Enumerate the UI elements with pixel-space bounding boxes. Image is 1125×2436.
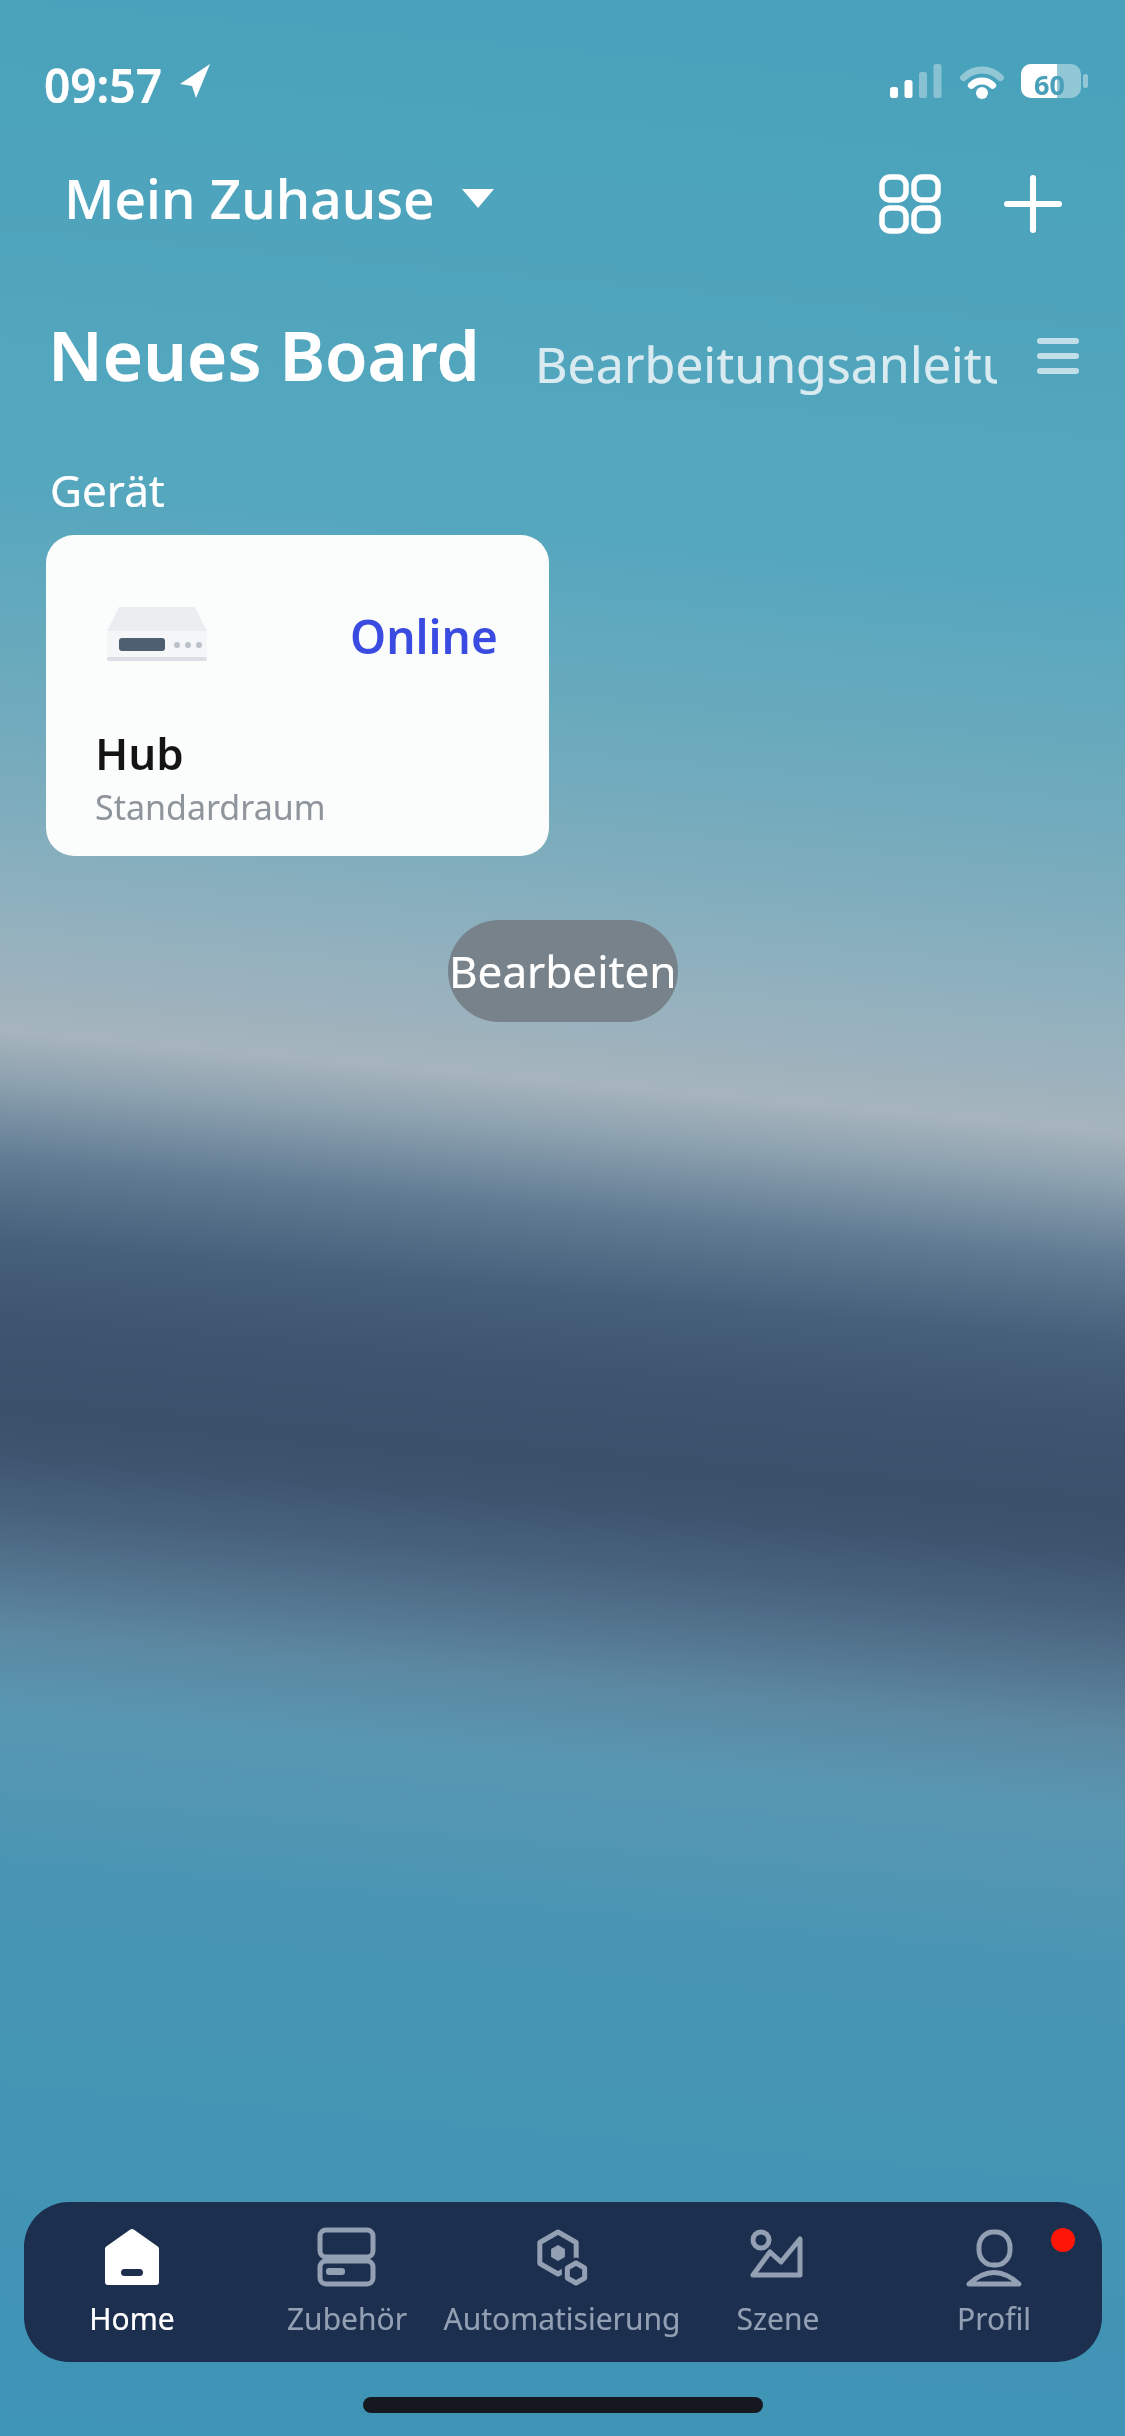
- button[interactable]: Bearbeitungsanleitung: [535, 330, 997, 398]
- button[interactable]: Szene: [670, 2202, 886, 2362]
- button[interactable]: Mein Zuhause: [64, 160, 495, 235]
- button[interactable]: [870, 164, 950, 244]
- button[interactable]: [995, 164, 1071, 244]
- button[interactable]: Bearbeiten: [448, 920, 678, 1022]
- staticText: Automatisierung: [402, 2298, 722, 2339]
- staticText: Profil: [834, 2298, 1102, 2339]
- staticText: Mein Zuhause: [64, 160, 435, 235]
- staticText: Bearbeitungsanleitung: [535, 330, 997, 398]
- staticText: Bearbeiten: [449, 941, 677, 1001]
- staticText: Hub: [95, 723, 184, 783]
- staticText: Neues Board: [48, 307, 480, 401]
- button[interactable]: Home: [24, 2202, 239, 2362]
- staticText: Standardraum: [95, 784, 326, 830]
- staticText: 09:57: [44, 54, 162, 117]
- staticText: Zubehör: [187, 2298, 507, 2339]
- button[interactable]: Automatisierung: [454, 2202, 670, 2362]
- button[interactable]: Zubehör: [239, 2202, 454, 2362]
- staticText: Home: [24, 2298, 292, 2339]
- button[interactable]: Profil: [886, 2202, 1102, 2362]
- staticText: Szene: [618, 2298, 938, 2339]
- staticText: 60: [1034, 66, 1065, 100]
- button[interactable]: [1028, 326, 1088, 390]
- staticText: Gerät: [50, 460, 165, 520]
- button[interactable]: Online: [46, 535, 549, 856]
- staticText: Online: [350, 605, 498, 668]
